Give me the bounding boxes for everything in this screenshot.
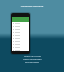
button[interactable] <box>12 25 29 28</box>
button[interactable] <box>12 22 29 25</box>
staticText: and phrases <box>25 60 39 63</box>
button[interactable] <box>12 28 29 31</box>
button[interactable] <box>12 34 29 37</box>
staticText: Language Learning <box>0 4 64 7</box>
button[interactable] <box>12 49 29 51</box>
button[interactable] <box>12 43 29 46</box>
staticText: Learn all of the <box>24 54 41 57</box>
button[interactable] <box>12 46 29 49</box>
button[interactable] <box>12 40 29 43</box>
staticText: basic vocabulary <box>23 57 42 60</box>
button[interactable] <box>12 31 29 34</box>
button[interactable] <box>12 37 29 40</box>
